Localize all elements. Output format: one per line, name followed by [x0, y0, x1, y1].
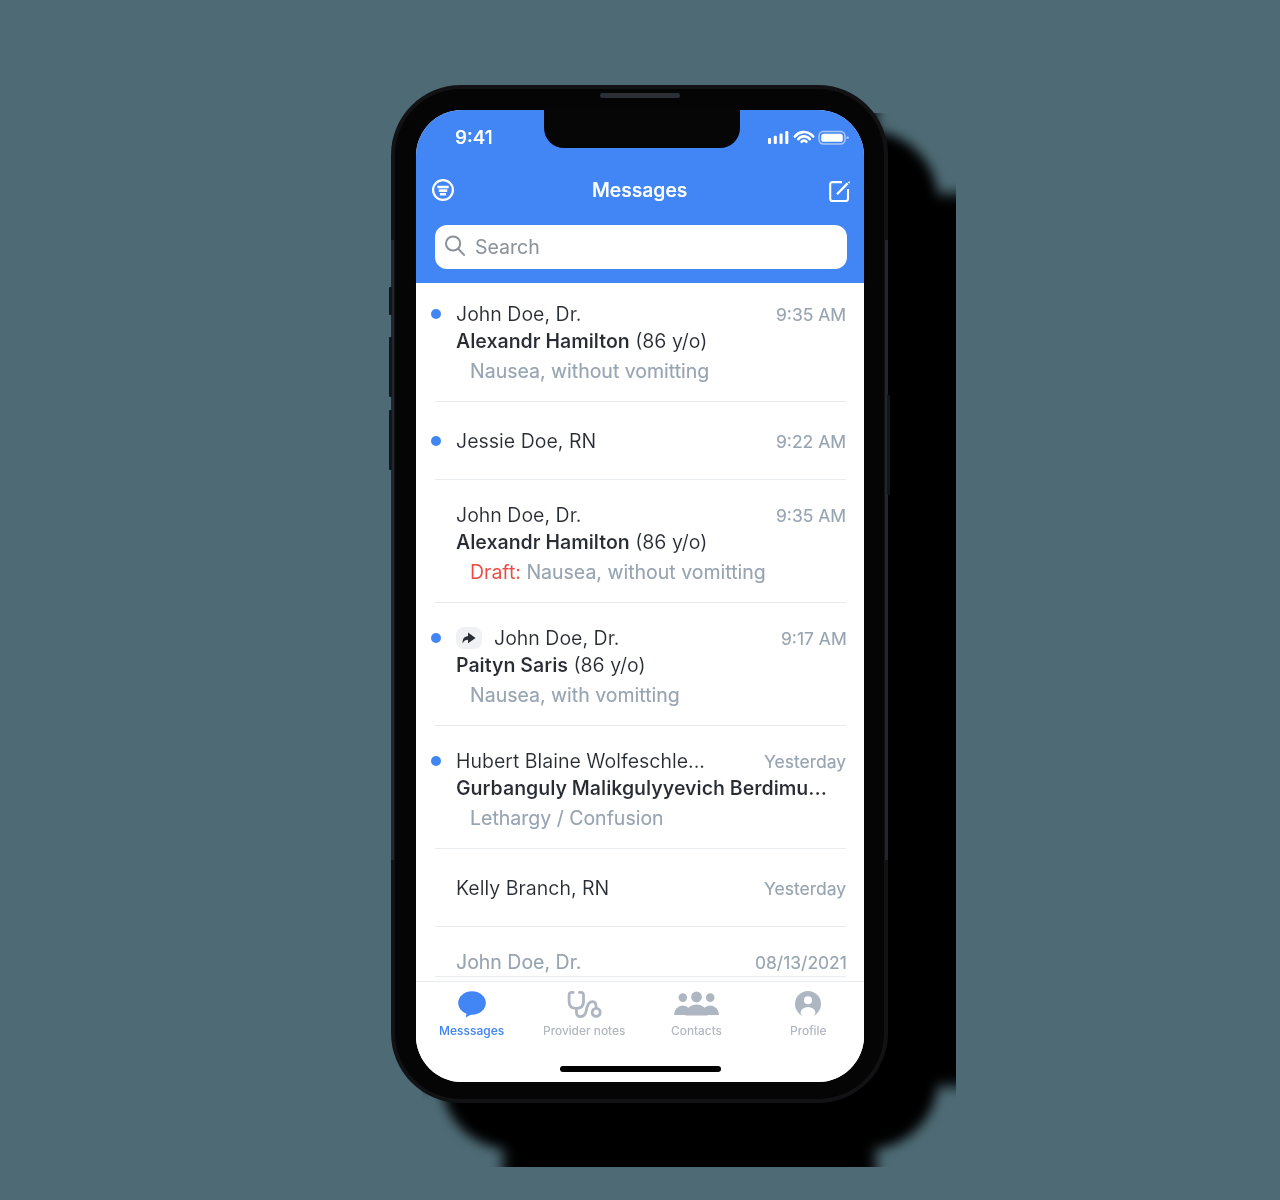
button[interactable]: Kelly Branch, RN	[416, 849, 864, 927]
staticText: Gurbanguly Malikgulyyevich Berdimu...	[456, 776, 827, 800]
staticText: Lethargy / Confusion	[470, 806, 664, 830]
staticText: Nausea, without vomitting	[470, 359, 710, 383]
staticText: Jessie Doe, RN	[456, 429, 597, 453]
staticText: Alexandr Hamilton (86 y/o)	[456, 530, 708, 554]
staticText: 9:41	[455, 126, 493, 149]
staticText: Yesterday	[764, 878, 847, 899]
staticText: 9:35 AM	[776, 304, 847, 325]
button[interactable]: John Doe, Dr.	[416, 480, 864, 603]
staticText: John Doe, Dr.	[494, 626, 620, 650]
button[interactable]: Messsages	[416, 982, 528, 1039]
staticText: 9:17 AM	[781, 628, 847, 649]
staticText: John Doe, Dr.	[456, 950, 582, 974]
staticText: Messages	[592, 178, 688, 202]
button[interactable]: Provider notes	[528, 982, 640, 1039]
button[interactable]: John Doe, Dr.	[416, 283, 864, 402]
button[interactable]: Profile	[752, 982, 864, 1039]
staticText: Alexandr Hamilton (86 y/o)	[456, 329, 708, 353]
staticText: Kelly Branch, RN	[456, 876, 610, 900]
button[interactable]: John Doe, Dr.	[416, 603, 864, 726]
staticText: Profile	[790, 1023, 827, 1038]
staticText: Hubert Blaine Wolfeschle...	[456, 749, 705, 773]
button[interactable]: Hubert Blaine Wolfeschle...	[416, 726, 864, 849]
button[interactable]: Jessie Doe, RN	[416, 402, 864, 480]
staticText: 9:35 AM	[776, 505, 847, 526]
staticText: Draft: Nausea, without vomitting	[470, 560, 766, 584]
staticText: Contacts	[671, 1023, 722, 1038]
staticText: John Doe, Dr.	[456, 503, 582, 527]
staticText: 9:22 AM	[776, 431, 847, 452]
button[interactable]: Contacts	[640, 982, 752, 1039]
button[interactable]: Search	[435, 225, 847, 269]
staticText: Paityn Saris (86 y/o)	[456, 653, 646, 677]
staticText: John Doe, Dr.	[456, 302, 582, 326]
staticText: 08/13/2021	[755, 952, 847, 973]
button[interactable]: Filter messages	[428, 175, 458, 205]
staticText: Messsages	[439, 1023, 505, 1038]
staticText: Nausea, with vomitting	[470, 683, 680, 707]
button[interactable]: John Doe, Dr.	[416, 927, 864, 977]
staticText: Search	[475, 235, 540, 259]
staticText: Provider notes	[543, 1023, 626, 1038]
staticText: Yesterday	[764, 751, 847, 772]
button[interactable]: Compose new message	[826, 177, 854, 205]
